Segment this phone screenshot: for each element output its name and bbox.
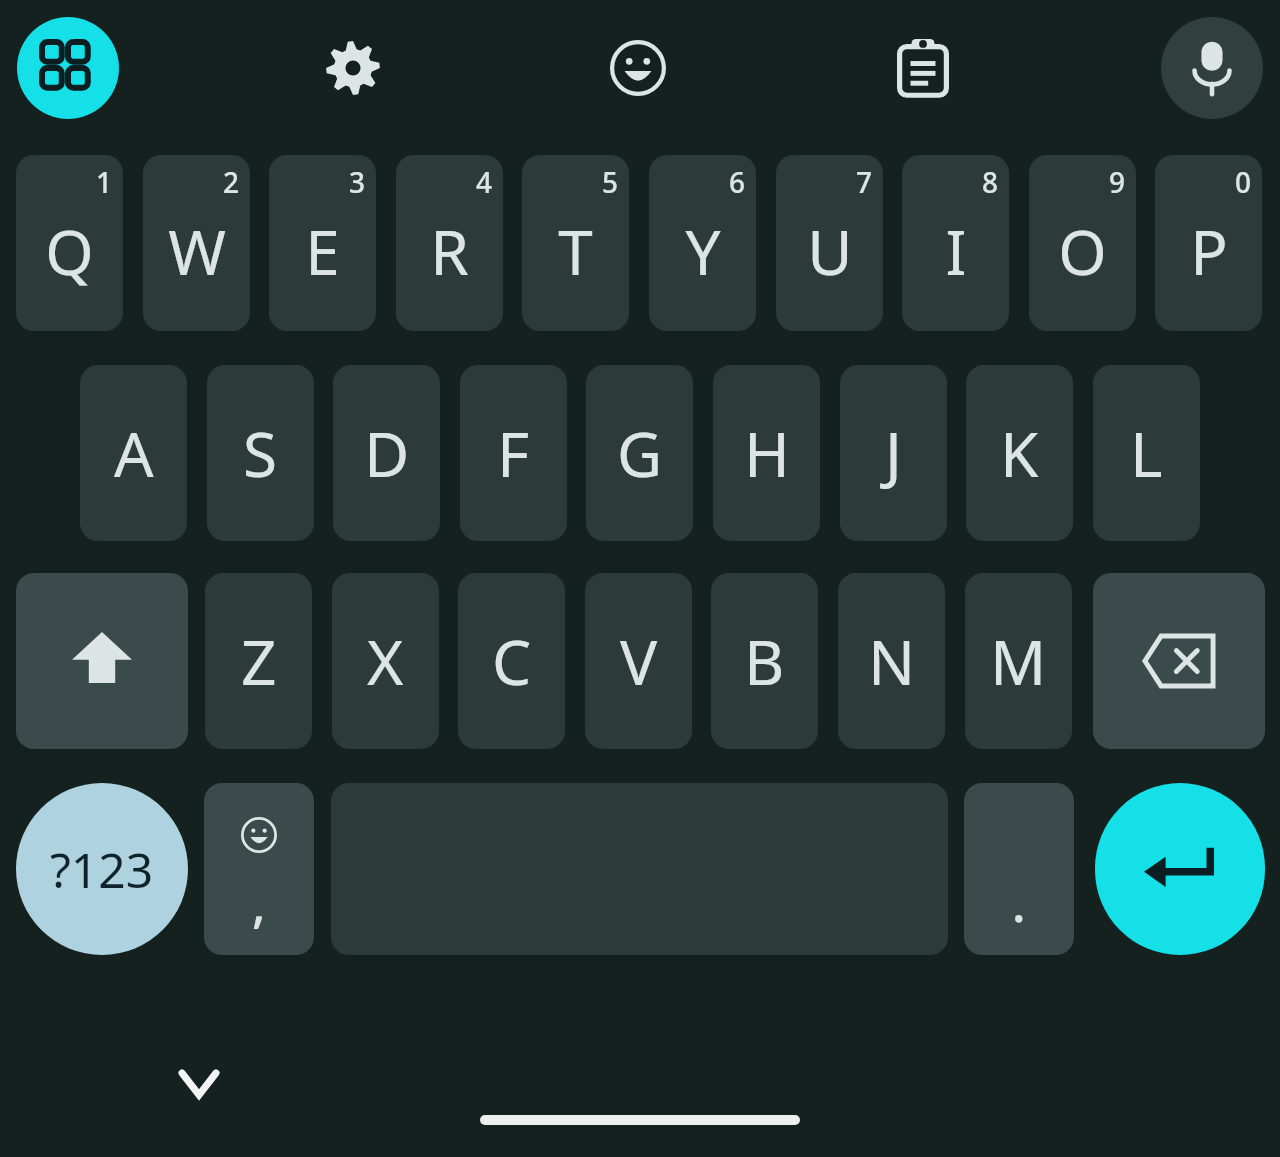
button[interactable]: Apps [17, 17, 119, 119]
button[interactable]: Z [205, 573, 312, 749]
staticText: F [497, 411, 530, 495]
staticText: 3 [349, 163, 366, 201]
button[interactable]: Settings [302, 17, 404, 119]
button[interactable]: V [585, 573, 692, 749]
button[interactable]: C [458, 573, 565, 749]
staticText: K [1000, 411, 1039, 495]
button[interactable]: ?123 [16, 783, 188, 955]
button[interactable]: 7 [776, 155, 883, 331]
button[interactable]: N [838, 573, 945, 749]
button[interactable]: Shift [16, 573, 188, 749]
staticText: E [305, 209, 340, 293]
staticText: U [807, 209, 853, 293]
button[interactable]: K [966, 365, 1073, 541]
staticText: 1 [96, 163, 113, 201]
staticText: A [114, 411, 154, 495]
staticText: Q [45, 209, 94, 293]
staticText: H [744, 411, 790, 495]
button[interactable]: A [80, 365, 187, 541]
button[interactable]: 8 [902, 155, 1009, 331]
button[interactable]: Emoji [587, 17, 689, 119]
button[interactable]: G [586, 365, 693, 541]
button[interactable]: D [333, 365, 440, 541]
staticText: C [492, 619, 532, 703]
button[interactable]: 2 [143, 155, 250, 331]
staticText: V [620, 619, 658, 703]
staticText: ?123 [50, 837, 154, 902]
button[interactable]: L [1093, 365, 1200, 541]
button[interactable]: X [332, 573, 439, 749]
staticText: I [945, 209, 967, 293]
staticText: G [617, 411, 663, 495]
staticText: M [990, 619, 1047, 703]
staticText: Y [685, 209, 721, 293]
staticText: S [243, 411, 278, 495]
button[interactable]: Voice input [1161, 17, 1263, 119]
staticText: J [885, 411, 902, 495]
staticText: 8 [982, 163, 999, 201]
staticText: 5 [602, 163, 619, 201]
button[interactable]: 4 [396, 155, 503, 331]
staticText: L [1130, 411, 1163, 495]
button[interactable]: 1 [16, 155, 123, 331]
button[interactable]: 6 [649, 155, 756, 331]
staticText: , [252, 869, 266, 937]
staticText: 4 [476, 163, 493, 201]
staticText: X [367, 619, 404, 703]
staticText: 0 [1235, 163, 1252, 201]
button[interactable]: H [713, 365, 820, 541]
button[interactable]: 5 [522, 155, 629, 331]
staticText: 9 [1109, 163, 1126, 201]
button[interactable]: F [460, 365, 567, 541]
staticText: Z [241, 619, 277, 703]
staticText: R [430, 209, 469, 293]
staticText: . [1012, 869, 1026, 937]
button[interactable]: Backspace [1093, 573, 1265, 749]
staticText: 7 [856, 163, 873, 201]
staticText: T [558, 209, 593, 293]
button[interactable]: 0 [1155, 155, 1262, 331]
button[interactable]: Clipboard [872, 17, 974, 119]
staticText: D [364, 411, 410, 495]
button[interactable]: J [840, 365, 947, 541]
staticText: B [744, 619, 785, 703]
button[interactable]: 9 [1029, 155, 1136, 331]
button[interactable]: Period [964, 783, 1074, 955]
button[interactable]: B [711, 573, 818, 749]
button[interactable]: Hide keyboard [160, 1048, 238, 1120]
staticText: P [1190, 209, 1228, 293]
button[interactable]: Enter [1095, 783, 1265, 955]
staticText: N [868, 619, 916, 703]
staticText: 6 [729, 163, 746, 201]
staticText: W [168, 209, 226, 293]
staticText: 2 [223, 163, 240, 201]
button[interactable]: Comma and emoji [204, 783, 314, 955]
button[interactable]: 3 [269, 155, 376, 331]
button[interactable]: M [965, 573, 1072, 749]
button[interactable]: S [207, 365, 314, 541]
staticText: O [1058, 209, 1107, 293]
